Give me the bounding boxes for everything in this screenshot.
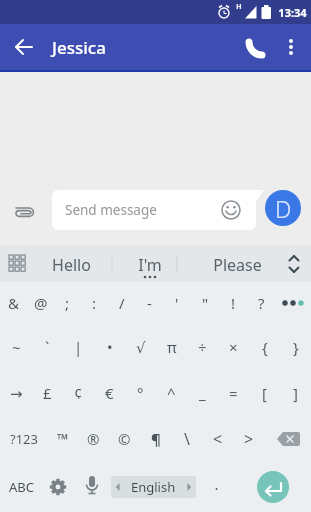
staticText: / — [119, 293, 125, 313]
staticText: @ — [34, 293, 48, 313]
button[interactable]: = — [218, 370, 249, 416]
button[interactable]: ~ — [0, 324, 32, 370]
staticText: " — [202, 293, 209, 313]
button[interactable]: ` — [32, 324, 63, 370]
button[interactable]: ™ — [47, 416, 78, 462]
button[interactable]: ?123 — [0, 416, 47, 462]
button[interactable]: ^ — [156, 370, 187, 416]
staticText: . — [214, 474, 219, 494]
button[interactable]: D — [265, 190, 301, 226]
button[interactable] — [8, 31, 40, 63]
staticText: : — [92, 293, 97, 313]
button[interactable] — [264, 416, 311, 462]
staticText: ABC — [9, 478, 34, 496]
staticText: ÷ — [198, 337, 207, 357]
button[interactable] — [4, 250, 32, 278]
button[interactable]: → — [0, 370, 32, 416]
button[interactable]: _ — [187, 370, 218, 416]
staticText: ¶ — [151, 429, 161, 449]
staticText: < — [213, 428, 223, 450]
staticText: ! — [231, 293, 236, 313]
button[interactable]: } — [280, 324, 311, 370]
button[interactable]: © — [109, 416, 140, 462]
staticText: • — [107, 337, 113, 357]
button[interactable] — [45, 474, 71, 500]
staticText: ` — [45, 337, 50, 357]
staticText: → — [10, 385, 23, 402]
button[interactable]: > — [233, 416, 264, 462]
button[interactable]: { — [249, 324, 280, 370]
button[interactable]: @ — [27, 282, 54, 324]
button[interactable] — [282, 250, 308, 278]
staticText: [ — [262, 383, 267, 403]
button[interactable]: ! — [219, 282, 247, 324]
button[interactable]: π — [156, 324, 187, 370]
staticText: ~ — [12, 337, 21, 357]
button[interactable]: < — [202, 416, 233, 462]
staticText: ¢ — [74, 383, 83, 403]
button[interactable]: ¢ — [63, 370, 94, 416]
button[interactable]: | — [63, 324, 94, 370]
button[interactable]: - — [135, 282, 163, 324]
button[interactable] — [220, 199, 242, 221]
staticText: € — [105, 383, 114, 403]
button[interactable]: £ — [32, 370, 63, 416]
button[interactable]: ' — [163, 282, 191, 324]
button[interactable]: : — [81, 282, 108, 324]
button[interactable] — [80, 473, 104, 501]
staticText: Hello — [52, 254, 91, 276]
button[interactable]: English — [111, 476, 196, 498]
button[interactable]: . — [206, 470, 226, 498]
button[interactable]: I'm — [128, 252, 172, 277]
button[interactable]: \ — [171, 416, 202, 462]
button[interactable]: × — [218, 324, 249, 370]
staticText: I'm — [138, 254, 162, 276]
button[interactable]: ° — [125, 370, 156, 416]
button[interactable]: ; — [54, 282, 81, 324]
staticText: D — [275, 193, 292, 224]
staticText: 13:34 — [278, 5, 307, 20]
button[interactable]: ] — [280, 370, 311, 416]
button[interactable]: [ — [249, 370, 280, 416]
button[interactable]: √ — [125, 324, 156, 370]
staticText: English — [131, 478, 176, 496]
button[interactable]: ¶ — [140, 416, 171, 462]
staticText: £ — [43, 383, 52, 403]
button[interactable]: € — [94, 370, 125, 416]
button[interactable] — [275, 282, 311, 324]
staticText: \ — [184, 428, 190, 450]
button[interactable]: / — [108, 282, 135, 324]
button[interactable] — [280, 33, 304, 61]
button[interactable]: • — [94, 324, 125, 370]
staticText: π — [167, 337, 177, 357]
staticText: × — [229, 337, 238, 357]
button[interactable]: Send message — [52, 190, 212, 230]
button[interactable] — [244, 33, 272, 61]
staticText: H — [236, 2, 242, 12]
staticText: { — [262, 337, 268, 357]
button[interactable]: ? — [247, 282, 275, 324]
staticText: } — [293, 337, 299, 357]
staticText: ; — [65, 293, 70, 313]
button[interactable]: Please — [204, 252, 270, 277]
staticText: Please — [213, 254, 262, 276]
staticText: © — [118, 429, 131, 449]
button[interactable]: Hello — [42, 252, 100, 277]
button[interactable]: ABC — [4, 475, 38, 499]
staticText: ] — [293, 383, 298, 403]
staticText: ? — [258, 293, 265, 313]
staticText: > — [244, 428, 254, 450]
button[interactable]: " — [191, 282, 219, 324]
button[interactable]: & — [0, 282, 27, 324]
staticText: Send message — [65, 201, 157, 219]
button[interactable] — [257, 471, 289, 503]
button[interactable] — [11, 197, 39, 225]
staticText: ® — [87, 429, 100, 449]
staticText: ' — [175, 293, 179, 313]
staticText: & — [8, 293, 19, 313]
button[interactable]: ÷ — [187, 324, 218, 370]
staticText: Jessica — [52, 36, 106, 59]
button[interactable]: ® — [78, 416, 109, 462]
staticText: = — [229, 383, 238, 403]
staticText: ?123 — [10, 430, 38, 448]
